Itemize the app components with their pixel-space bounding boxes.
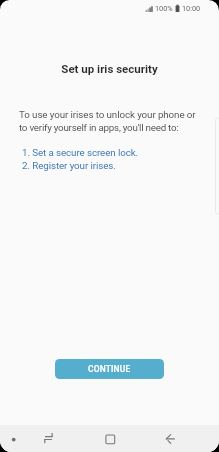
staticText: 100%: [155, 4, 173, 13]
button[interactable]: [160, 428, 180, 448]
staticText: to verify yourself in apps, you'll need …: [19, 122, 179, 133]
staticText: Set up iris security: [0, 62, 219, 75]
staticText: 10:00: [182, 4, 201, 13]
button[interactable]: [39, 428, 59, 448]
button[interactable]: CONTINUE: [55, 359, 164, 379]
staticText: CONTINUE: [88, 364, 131, 374]
staticText: To use your irises to unlock your phone …: [19, 109, 196, 120]
button[interactable]: [100, 428, 120, 448]
button[interactable]: 1. Set a secure screen lock. 2. Register…: [22, 147, 139, 171]
